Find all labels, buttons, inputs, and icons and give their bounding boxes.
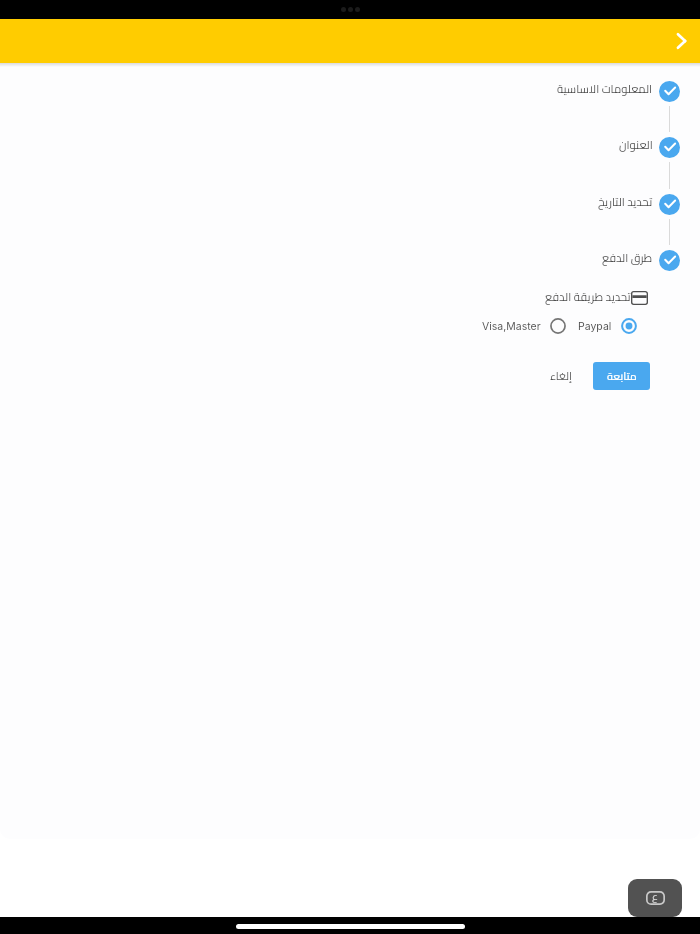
button[interactable]: Switch keyboard language xyxy=(628,879,682,917)
staticText: Visa,Master xyxy=(482,320,541,333)
staticText: المعلومات الاساسية xyxy=(557,78,653,99)
staticText: تحديد التاريخ xyxy=(598,191,653,212)
button[interactable]: Visa,Master xyxy=(476,314,570,338)
staticText: العنوان xyxy=(619,134,653,155)
staticText: طرق الدفع xyxy=(602,247,653,268)
button[interactable]: تحديد طريقة الدفع xyxy=(539,283,649,309)
button[interactable]: متابعة xyxy=(593,362,650,390)
button[interactable]: المعلومات الاساسية xyxy=(0,74,653,102)
button[interactable]: تحديد التاريخ xyxy=(0,187,653,215)
button[interactable]: Paypal, selected xyxy=(572,314,642,338)
staticText: متابعة xyxy=(607,366,637,386)
button[interactable]: Back xyxy=(662,22,700,60)
button[interactable]: إلغاء xyxy=(542,362,580,390)
staticText: تحديد طريقة الدفع xyxy=(545,286,631,307)
button[interactable]: طرق الدفع xyxy=(0,243,653,271)
staticText: Paypal xyxy=(578,320,612,333)
staticText: إلغاء xyxy=(550,366,572,386)
staticText: ع xyxy=(652,886,658,906)
button[interactable]: العنوان xyxy=(0,130,653,158)
